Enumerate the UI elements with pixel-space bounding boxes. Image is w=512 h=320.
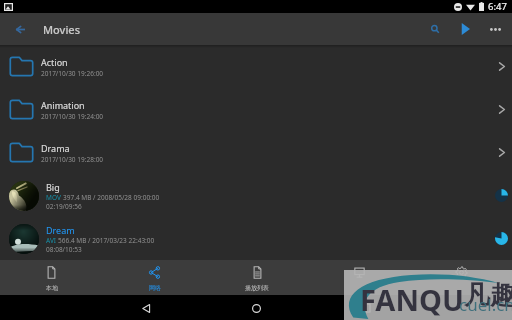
staticText: Big [46, 181, 60, 193]
button[interactable]: More options [480, 13, 510, 45]
button[interactable]: Playback progress for Dream [490, 217, 512, 260]
button[interactable]: Settings [308, 260, 410, 295]
button[interactable]: Play [450, 13, 480, 45]
button[interactable]: Open Animation [491, 88, 512, 131]
staticText: Drama [41, 142, 70, 154]
button[interactable]: Big [0, 174, 512, 217]
staticText: Action [41, 56, 68, 68]
button[interactable]: Animation [0, 88, 512, 131]
button[interactable]: 网络 [103, 260, 206, 295]
button[interactable]: Drama [0, 131, 512, 174]
button[interactable]: Open Action [491, 45, 512, 88]
button[interactable]: Settings [410, 260, 512, 295]
staticText: 08:08/10:53 [46, 245, 82, 254]
staticText: MOV [46, 193, 61, 202]
staticText: cuel.cn [459, 293, 512, 316]
staticText: 凡趣 [464, 279, 512, 312]
staticText: FANQU [360, 280, 464, 319]
button[interactable]: Playback progress for Big [490, 174, 512, 217]
button[interactable]: 播放列表 [206, 260, 308, 295]
staticText: 播放列表 [245, 284, 269, 292]
button[interactable]: Recents [354, 296, 378, 320]
button[interactable]: Back [5, 13, 35, 45]
staticText: 6:47 [488, 0, 507, 13]
button[interactable]: Home [244, 296, 268, 320]
staticText: 本地 [46, 284, 58, 292]
staticText: 2017/10/30 19:24:00 [41, 112, 104, 121]
button[interactable]: 本地 [0, 260, 103, 295]
staticText: Animation [41, 99, 85, 111]
staticText: 566.4 MB / 2017/03/23 22:43:00 [58, 236, 155, 245]
staticText: 2017/10/30 19:28:00 [41, 155, 104, 164]
staticText: 网络 [149, 284, 161, 292]
button[interactable]: Back [134, 296, 158, 320]
staticText: Dream [46, 224, 75, 236]
button[interactable]: Open Drama [491, 131, 512, 174]
button[interactable]: Action [0, 45, 512, 88]
staticText: Movies [43, 22, 81, 37]
staticText: AVI [46, 236, 56, 245]
button[interactable]: Dream [0, 217, 512, 260]
staticText: 397.4 MB / 2008/05/28 09:00:00 [63, 193, 160, 202]
staticText: 02:19/09:56 [46, 202, 82, 211]
staticText: 2017/10/30 19:26:00 [41, 69, 104, 78]
button[interactable]: Search [420, 13, 450, 45]
